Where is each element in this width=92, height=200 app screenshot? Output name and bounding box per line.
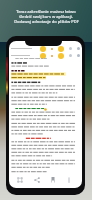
button[interactable]: Highlighter bbox=[58, 53, 64, 59]
staticText: Dodawaj adnotacje do plików PDF bbox=[14, 19, 79, 24]
button[interactable]: Bookmark bbox=[50, 177, 56, 183]
button[interactable]: Highlighter yellow bbox=[40, 53, 46, 59]
staticText: śledzić swój kurs w aplikacji. bbox=[19, 14, 73, 19]
button[interactable]: Crop bbox=[17, 177, 23, 183]
staticText: Teraz zakreślanie możesz łatwo bbox=[16, 9, 76, 14]
button[interactable]: Highlighter yellow bbox=[40, 46, 46, 52]
button[interactable]: Highlighter bbox=[58, 46, 64, 52]
button[interactable]: More options bbox=[66, 177, 72, 183]
button[interactable]: Share bbox=[34, 177, 40, 183]
